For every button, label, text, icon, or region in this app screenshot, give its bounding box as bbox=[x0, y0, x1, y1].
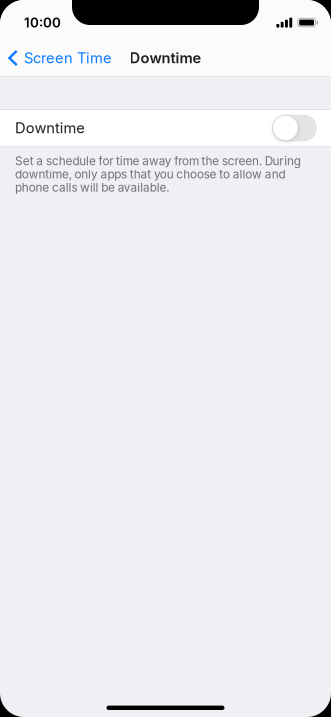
button[interactable]: Screen Time bbox=[0, 39, 118, 77]
staticText: 10:00 bbox=[24, 14, 61, 31]
staticText: Screen Time bbox=[24, 49, 112, 67]
staticText: Downtime bbox=[15, 119, 85, 137]
staticText: Set a schedule for time away from the sc… bbox=[15, 154, 301, 195]
button[interactable]: Downtime bbox=[0, 109, 331, 147]
staticText: Downtime bbox=[129, 49, 201, 67]
